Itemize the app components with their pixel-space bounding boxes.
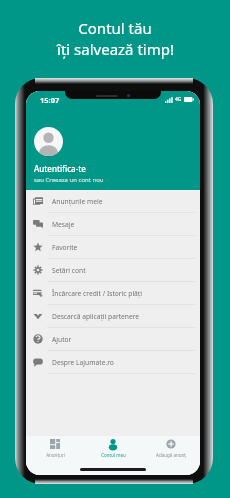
staticText: sau Creeaza un cont nou xyxy=(34,176,104,184)
staticText: îți salvează timp! xyxy=(57,39,174,59)
staticText: Mesaje xyxy=(52,220,75,229)
staticText: Descarcă aplicații partenere xyxy=(52,312,140,321)
staticText: Autentifica-te xyxy=(34,163,86,174)
staticText: Adaugă anunț xyxy=(156,452,186,458)
staticText: Setări cont xyxy=(52,266,86,275)
staticText: Încărcare credit / Istoric plăți xyxy=(52,289,143,298)
staticText: 4G xyxy=(175,96,182,103)
button[interactable]: Încărcare credit / Istoric plăți xyxy=(26,282,200,305)
staticText: Anunțuri xyxy=(46,452,65,458)
staticText: 15:07 xyxy=(40,95,60,105)
button[interactable]: Despre Lajumate.ro xyxy=(26,351,200,374)
button[interactable]: Anunțuri xyxy=(26,439,84,458)
button[interactable]: Adaugă anunț xyxy=(142,439,200,458)
staticText: Anunțurile mele xyxy=(52,197,103,206)
staticText: Ajutor xyxy=(52,335,72,344)
button[interactable]: Favorite xyxy=(26,236,200,259)
staticText: Despre Lajumate.ro xyxy=(52,358,114,367)
staticText: Contul meu xyxy=(101,452,126,458)
button[interactable]: Setări cont xyxy=(26,259,200,282)
staticText: Contul tău xyxy=(78,18,152,38)
staticText: Favorite xyxy=(52,243,78,252)
button[interactable]: Contul meu xyxy=(84,439,142,458)
button[interactable]: Ajutor xyxy=(26,328,200,351)
button[interactable]: Anunțurile mele xyxy=(26,190,200,213)
button[interactable]: Descarcă aplicații partenere xyxy=(26,305,200,328)
button[interactable]: Mesaje xyxy=(26,213,200,236)
